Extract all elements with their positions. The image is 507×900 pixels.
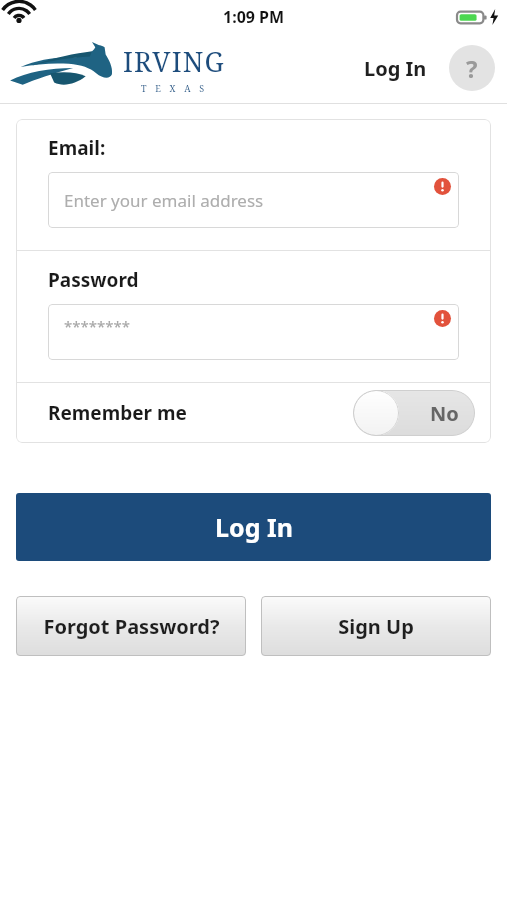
other: Battery charging [457,10,487,25]
staticText: Enter your email address [64,189,264,212]
staticText: Password [48,267,139,293]
staticText: Remember me [48,400,187,426]
staticText: Sign Up [338,613,414,640]
button[interactable]: ******** [48,304,459,360]
staticText: IRVING [123,43,226,80]
staticText: No [430,400,459,427]
staticText: ******** [64,316,131,336]
other: Error [434,310,451,327]
staticText: Log In [364,55,427,82]
staticText: Log In [215,510,293,544]
button[interactable]: Remember me [16,383,491,443]
button[interactable]: Log In [356,49,435,88]
staticText: 1:09 PM [223,6,285,28]
other: Error [434,178,451,195]
button[interactable]: Help [449,45,495,91]
staticText: ? [466,52,478,85]
button[interactable]: Sign Up [261,596,491,656]
button[interactable]: Forgot Password? [16,596,246,656]
other: Wi-Fi [0,7,26,27]
staticText: T E X A S [141,82,208,94]
button[interactable]: Remember me toggle, off [353,390,475,436]
staticText: Email: [48,135,106,161]
button[interactable]: Log In [16,493,491,561]
staticText: Forgot Password? [43,613,220,640]
button[interactable]: Enter your email address [48,172,459,228]
